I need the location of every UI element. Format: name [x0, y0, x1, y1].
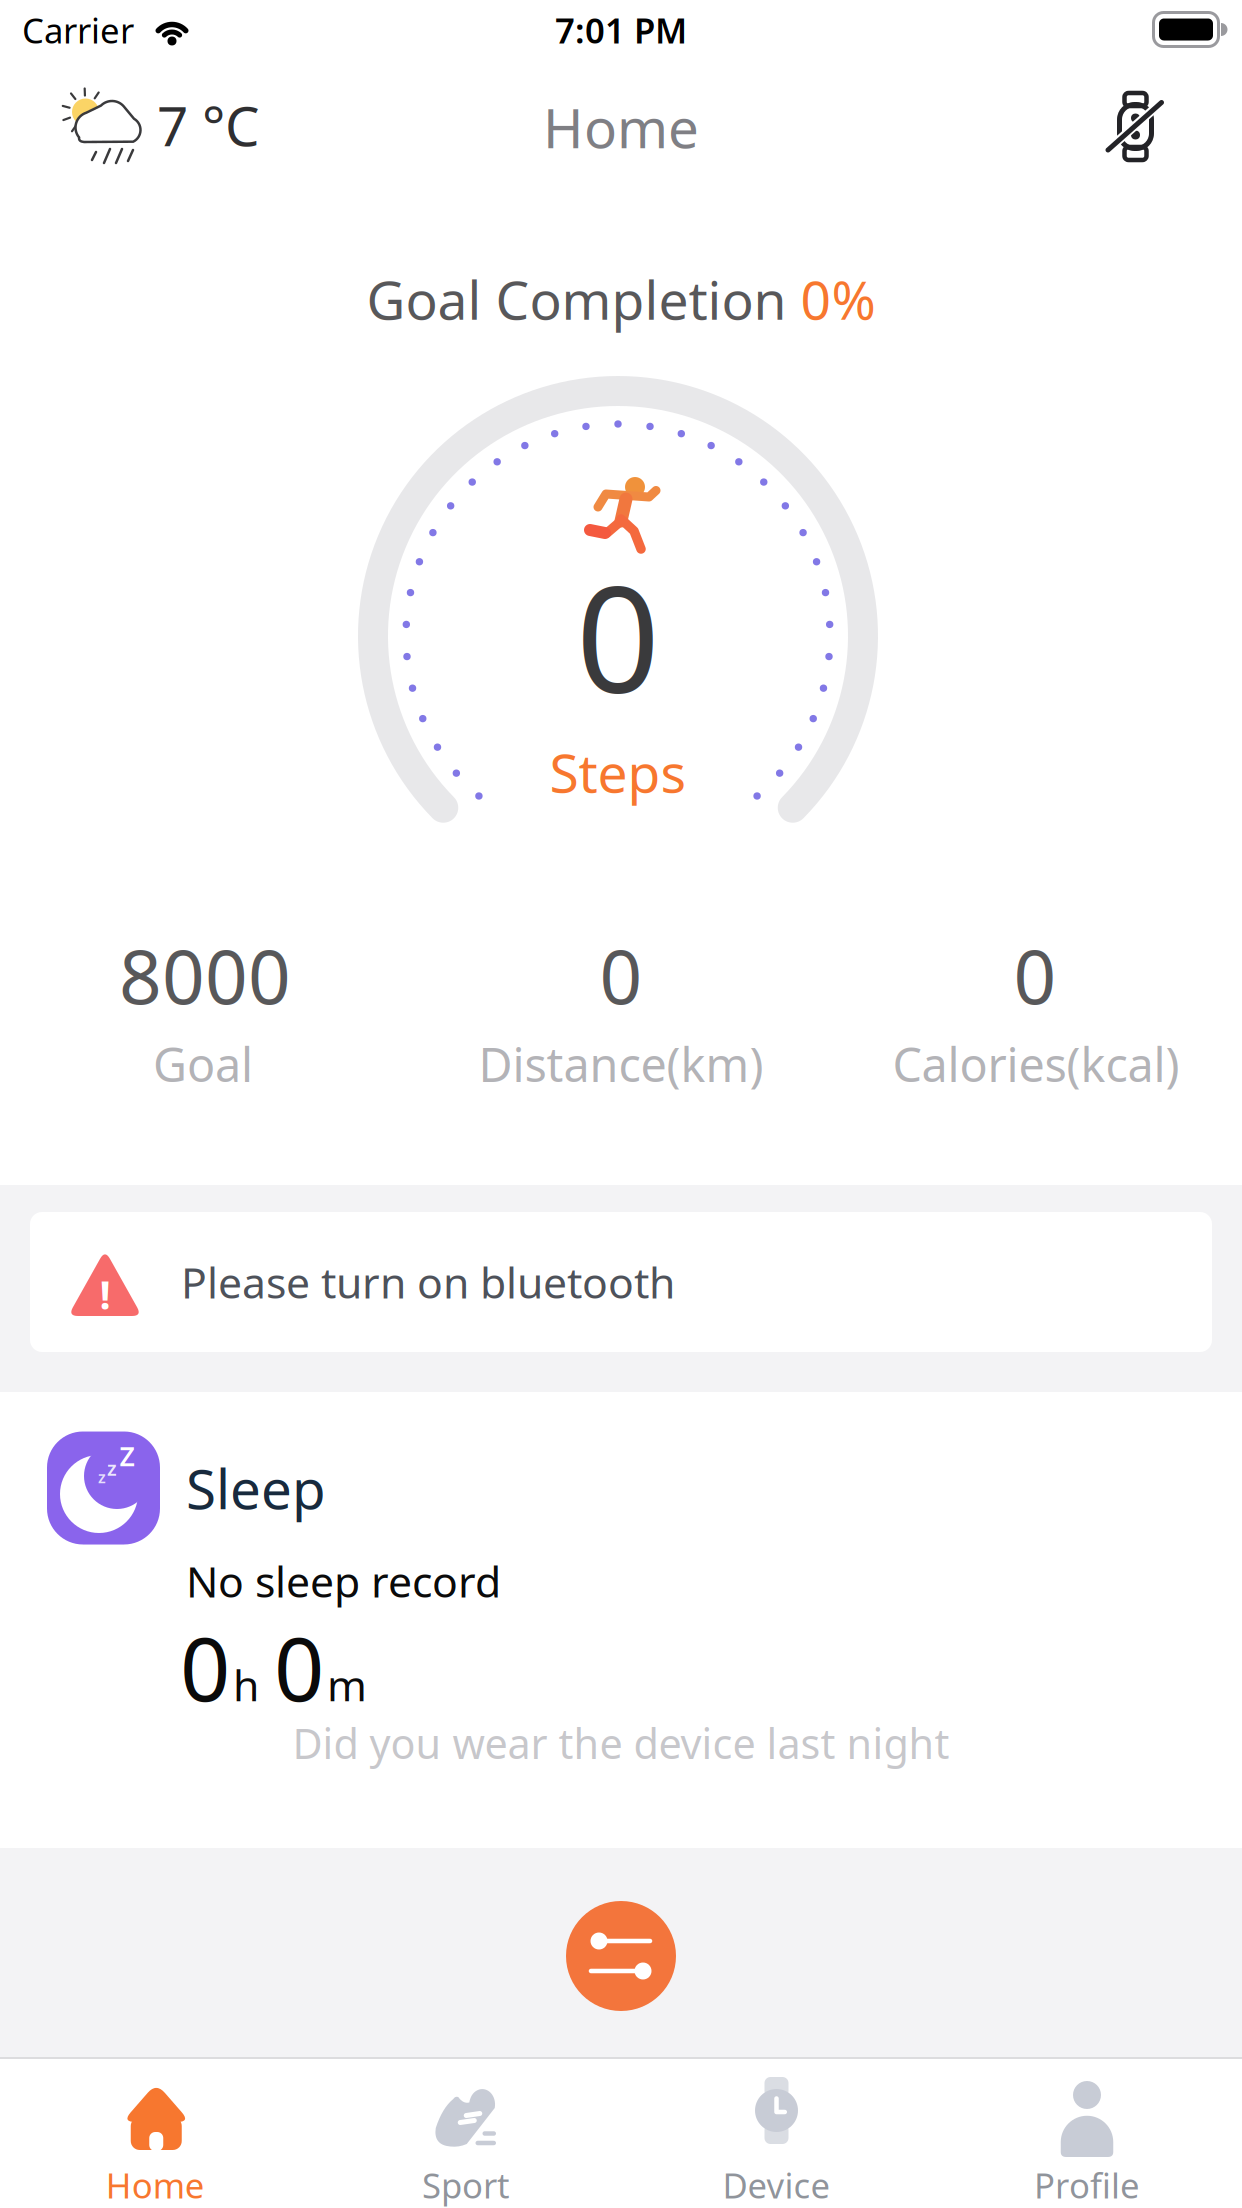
staticText: z	[98, 1466, 106, 1488]
staticText: 0	[576, 539, 660, 733]
staticText: Home	[106, 2162, 205, 2208]
staticText: Device	[722, 2162, 830, 2208]
staticText: No sleep record	[186, 1553, 501, 1609]
staticText: Did you wear the device last night	[292, 1716, 949, 1770]
button[interactable]: Goal settings	[565, 1900, 677, 2012]
staticText: h	[233, 1656, 259, 1713]
button[interactable]: Home	[0, 2060, 310, 2208]
staticText: Z	[119, 1438, 134, 1474]
button[interactable]: Profile	[932, 2060, 1242, 2208]
staticText: 0	[599, 925, 642, 1025]
staticText: Calories(kcal)	[892, 1033, 1179, 1095]
staticText: 7:01 PM	[555, 7, 687, 53]
staticText: Distance(km)	[478, 1033, 763, 1095]
staticText: 8000	[119, 925, 291, 1025]
staticText: 0%	[800, 264, 875, 334]
staticText: !	[99, 1267, 110, 1320]
button[interactable]: !	[30, 1212, 1212, 1352]
staticText: Goal	[153, 1033, 253, 1095]
staticText: Steps	[549, 737, 686, 807]
staticText: Sleep	[186, 1452, 326, 1524]
staticText: Home	[543, 91, 699, 163]
staticText: 0	[180, 1609, 230, 1725]
button[interactable]: Device	[621, 2060, 931, 2208]
button[interactable]: Sport	[311, 2060, 621, 2208]
staticText: Profile	[1034, 2162, 1140, 2208]
staticText: Carrier	[22, 7, 134, 53]
staticText: 7 °C	[157, 89, 260, 161]
staticText: Please turn on bluetooth	[181, 1254, 675, 1310]
button[interactable]: z	[0, 1420, 1242, 1790]
staticText: Sport	[422, 2162, 510, 2208]
staticText: 0	[1013, 925, 1056, 1025]
staticText: 0	[274, 1609, 324, 1725]
staticText: z	[107, 1455, 117, 1481]
staticText: Goal Completion	[366, 264, 800, 334]
button[interactable]: Device disconnected	[1092, 81, 1182, 171]
staticText: m	[327, 1656, 367, 1713]
